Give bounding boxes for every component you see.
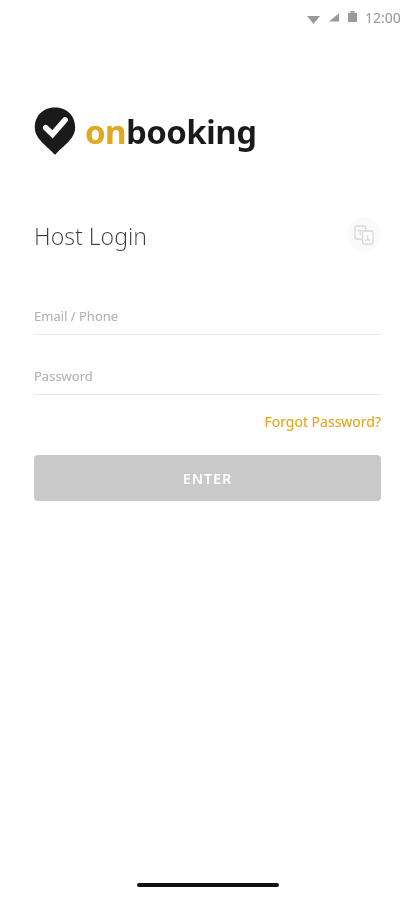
button[interactable]: Change language xyxy=(347,218,381,252)
staticText: Email / Phone xyxy=(34,307,119,325)
button[interactable]: ENTER xyxy=(34,455,381,501)
staticText: 12:00 xyxy=(365,8,401,27)
staticText: onbooking xyxy=(85,109,257,154)
staticText: ENTER xyxy=(183,469,233,488)
button[interactable]: Forgot Password? xyxy=(34,412,381,431)
staticText: Password xyxy=(34,367,93,385)
button[interactable]: Email / Phone xyxy=(34,298,381,334)
staticText: Host Login xyxy=(34,220,147,251)
button[interactable]: Password xyxy=(34,358,381,394)
